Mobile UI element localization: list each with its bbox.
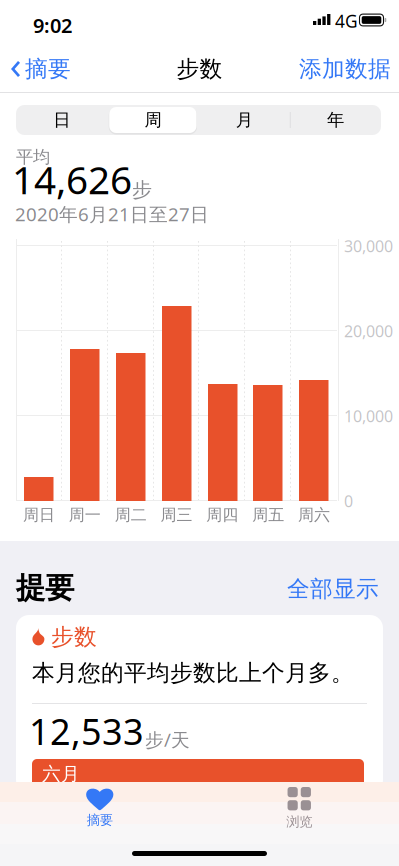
button[interactable]: 周 — [107, 105, 198, 135]
staticText: 10,000 — [344, 405, 393, 427]
button[interactable]: 月 — [198, 105, 290, 135]
staticText: 年 — [327, 109, 344, 131]
staticText: 14,626 — [12, 154, 132, 205]
staticText: 提要 — [16, 570, 74, 606]
button[interactable]: 摘要 — [0, 782, 199, 834]
button[interactable]: 步数 — [16, 616, 383, 792]
staticText: 平均 — [16, 146, 50, 168]
staticText: 步数 — [176, 55, 222, 83]
button[interactable]: 摘要 — [4, 50, 78, 88]
staticText: 步数 — [51, 623, 97, 651]
staticText: 2020年6月21日至27日 — [15, 202, 209, 226]
staticText: 9:02 — [33, 12, 72, 39]
staticText: 日 — [53, 109, 70, 131]
staticText: 20,000 — [344, 320, 393, 342]
staticText: 六月 — [42, 762, 80, 785]
staticText: 周三 — [160, 505, 192, 525]
staticText: 30,000 — [344, 235, 393, 257]
staticText: 周四 — [206, 505, 238, 525]
staticText: 周 — [144, 109, 161, 131]
staticText: 12,533 — [29, 707, 144, 755]
staticText: 步 — [132, 177, 152, 202]
staticText: 摘要 — [87, 812, 113, 828]
staticText: 4G — [335, 9, 358, 32]
staticText: 周五 — [252, 505, 284, 525]
staticText: 0 — [344, 490, 353, 512]
button[interactable]: 全部显示 — [287, 576, 383, 602]
button[interactable]: 添加数据 — [299, 50, 391, 88]
staticText: 步/天 — [145, 727, 190, 752]
staticText: 浏览 — [286, 814, 312, 830]
staticText: 本月您的平均步数比上个月多。 — [32, 659, 354, 687]
button[interactable]: 浏览 — [199, 782, 399, 835]
staticText: 月 — [236, 109, 253, 131]
staticText: 周六 — [298, 505, 330, 525]
staticText: 周二 — [115, 505, 147, 525]
staticText: 摘要 — [25, 55, 71, 83]
staticText: 周日 — [23, 505, 55, 525]
staticText: 添加数据 — [299, 55, 391, 83]
button[interactable]: 日 — [16, 105, 107, 135]
button[interactable]: 年 — [290, 105, 381, 135]
staticText: 周一 — [69, 505, 101, 525]
staticText: 全部显示 — [287, 575, 379, 603]
